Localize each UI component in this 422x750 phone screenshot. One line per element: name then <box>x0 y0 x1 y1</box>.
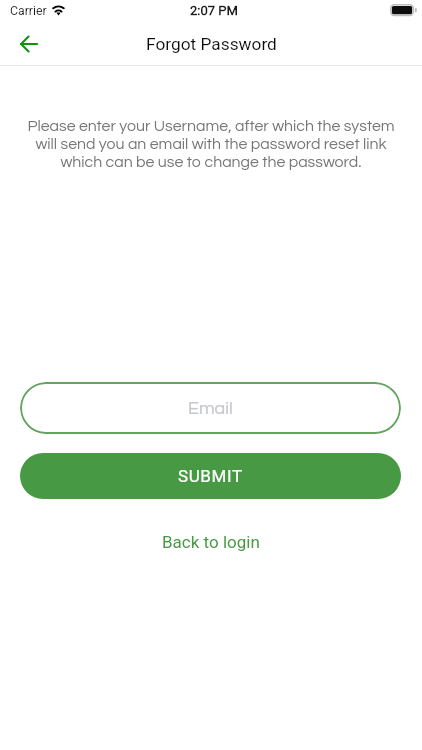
button[interactable]: Email <box>20 382 401 434</box>
button[interactable]: SUBMIT <box>20 453 401 499</box>
button[interactable]: Back <box>6 24 52 64</box>
staticText: SUBMIT <box>178 466 243 486</box>
staticText: Carrier <box>10 4 47 18</box>
staticText: 2:07 PM <box>190 3 238 18</box>
staticText: Please enter your Username, after which … <box>22 118 400 170</box>
staticText: Back to login <box>162 532 260 552</box>
staticText: Email <box>188 399 233 418</box>
staticText: Forgot Password <box>146 34 277 54</box>
button[interactable]: Back to login <box>148 528 274 556</box>
